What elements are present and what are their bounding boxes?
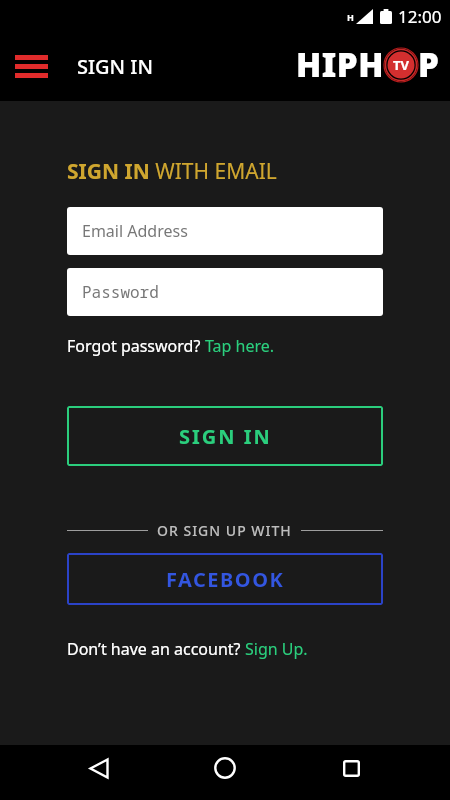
button[interactable] bbox=[288, 745, 414, 800]
staticText: 12:00 bbox=[398, 5, 442, 28]
button[interactable]: FACEBOOK bbox=[67, 553, 383, 605]
staticText: SIGN IN bbox=[179, 423, 272, 450]
button[interactable] bbox=[162, 745, 288, 800]
staticText: Email Address bbox=[82, 220, 188, 242]
staticText: OR SIGN UP WITH bbox=[157, 521, 292, 540]
staticText: Sign Up. bbox=[245, 638, 308, 660]
button[interactable]: Sign Up. bbox=[245, 638, 308, 660]
staticText: SIGN IN bbox=[77, 53, 153, 80]
staticText: Forgot password? bbox=[67, 335, 205, 357]
button[interactable]: Tap here. bbox=[205, 335, 275, 357]
button[interactable]: SIGN IN bbox=[67, 406, 383, 466]
staticText: TV bbox=[393, 56, 409, 74]
staticText: H bbox=[347, 11, 354, 23]
staticText: P bbox=[418, 42, 439, 87]
button[interactable] bbox=[0, 32, 63, 101]
button[interactable]: Password bbox=[67, 268, 383, 316]
staticText: Tap here. bbox=[205, 335, 275, 357]
staticText: Don’t have an account? bbox=[67, 638, 245, 660]
staticText: SIGN IN WITH EMAIL bbox=[67, 157, 277, 186]
button[interactable] bbox=[36, 745, 162, 800]
staticText: FACEBOOK bbox=[166, 566, 285, 593]
button[interactable]: Email Address bbox=[67, 207, 383, 255]
staticText: HIPH bbox=[296, 42, 384, 87]
staticText: Password bbox=[82, 281, 159, 303]
